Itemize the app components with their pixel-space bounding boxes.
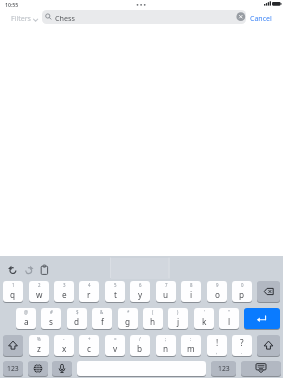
staticText: 6 (139, 282, 142, 288)
staticText: l (228, 316, 231, 327)
staticText: # (50, 309, 53, 315)
button[interactable]: 7 (156, 281, 176, 302)
staticText: e (62, 289, 67, 300)
staticText: + (88, 336, 91, 342)
button[interactable]: , (207, 335, 227, 356)
staticText: f (101, 316, 104, 327)
staticText: q (10, 289, 16, 300)
staticText: u (163, 289, 169, 300)
staticText: " (228, 309, 230, 315)
button[interactable]: @ (16, 308, 36, 329)
staticText: 7 (165, 282, 168, 288)
staticText: @ (24, 309, 28, 315)
button[interactable]: 123 (211, 361, 236, 376)
button[interactable]: . (232, 335, 252, 356)
button[interactable]: 1 (3, 281, 23, 302)
staticText: , (216, 349, 218, 355)
staticText: m (187, 343, 195, 354)
button[interactable]: ' (194, 308, 214, 329)
staticText: 2 (38, 282, 41, 288)
staticText: ' (204, 309, 205, 315)
button[interactable] (257, 281, 280, 302)
staticText: j (177, 316, 180, 327)
staticText: 123 (7, 364, 19, 373)
button[interactable]: 2 (29, 281, 49, 302)
staticText: c (87, 343, 91, 354)
staticText: k (202, 316, 207, 327)
staticText: z (37, 343, 41, 354)
staticText: Cancel (250, 14, 272, 24)
button[interactable]: 3 (54, 281, 74, 302)
button[interactable]: : (181, 335, 201, 356)
button[interactable]: - (54, 335, 74, 356)
staticText: o (215, 289, 220, 300)
button[interactable] (77, 361, 206, 376)
staticText: ! (216, 337, 219, 348)
button[interactable]: 0 (232, 281, 252, 302)
staticText: ) (177, 309, 179, 315)
staticText: 8 (190, 282, 193, 288)
staticText: h (150, 316, 156, 327)
button[interactable]: Cancel (249, 14, 275, 25)
staticText: . (241, 349, 243, 355)
button[interactable] (52, 361, 72, 376)
button[interactable]: Filters (10, 14, 40, 24)
button[interactable]: ( (143, 308, 163, 329)
staticText: $ (76, 309, 79, 315)
button[interactable]: ) (168, 308, 188, 329)
staticText: t (114, 289, 117, 300)
staticText: 10:55 (5, 1, 19, 8)
staticText: a (24, 316, 29, 327)
staticText: = (114, 336, 117, 342)
staticText: % (37, 336, 41, 342)
staticText: / (139, 336, 141, 342)
button[interactable]: $ (67, 308, 87, 329)
staticText: v (113, 343, 118, 354)
staticText: Chess (55, 13, 75, 23)
staticText: y (138, 289, 143, 300)
button[interactable]: + (79, 335, 99, 356)
button[interactable]: ; (156, 335, 176, 356)
button[interactable]: * (118, 308, 138, 329)
staticText: 9 (216, 282, 219, 288)
button[interactable] (257, 335, 280, 356)
staticText: 1 (12, 282, 15, 288)
button[interactable] (3, 335, 23, 356)
button[interactable]: 8 (181, 281, 201, 302)
button[interactable]: = (105, 335, 125, 356)
staticText: 3 (63, 282, 66, 288)
staticText: 5 (114, 282, 117, 288)
staticText: 4 (88, 282, 91, 288)
staticText: i (190, 289, 193, 300)
staticText: * (127, 309, 130, 315)
staticText: r (87, 289, 91, 300)
staticText: ? (240, 337, 244, 348)
staticText: - (63, 336, 65, 342)
button[interactable]: " (219, 308, 239, 329)
staticText: ; (165, 336, 167, 342)
button[interactable] (241, 361, 281, 376)
staticText: Filters (11, 14, 31, 24)
staticText: n (163, 343, 169, 354)
staticText: x (62, 343, 67, 354)
button[interactable]: 4 (79, 281, 99, 302)
button[interactable]: / (130, 335, 150, 356)
staticText: s (49, 316, 53, 327)
button[interactable]: # (41, 308, 61, 329)
button[interactable]: % (29, 335, 49, 356)
staticText: & (100, 309, 104, 315)
staticText: b (137, 343, 143, 354)
staticText: : (190, 336, 192, 342)
button[interactable]: 9 (207, 281, 227, 302)
button[interactable] (244, 308, 280, 329)
button[interactable]: 6 (130, 281, 150, 302)
staticText: 123 (218, 364, 230, 373)
button[interactable] (28, 361, 48, 376)
staticText: p (239, 289, 245, 300)
button[interactable]: 5 (105, 281, 125, 302)
staticText: ( (152, 309, 154, 315)
button[interactable]: 123 (3, 361, 23, 376)
button[interactable]: & (92, 308, 112, 329)
button[interactable]: Chess (42, 10, 246, 24)
staticText: w (36, 289, 43, 300)
